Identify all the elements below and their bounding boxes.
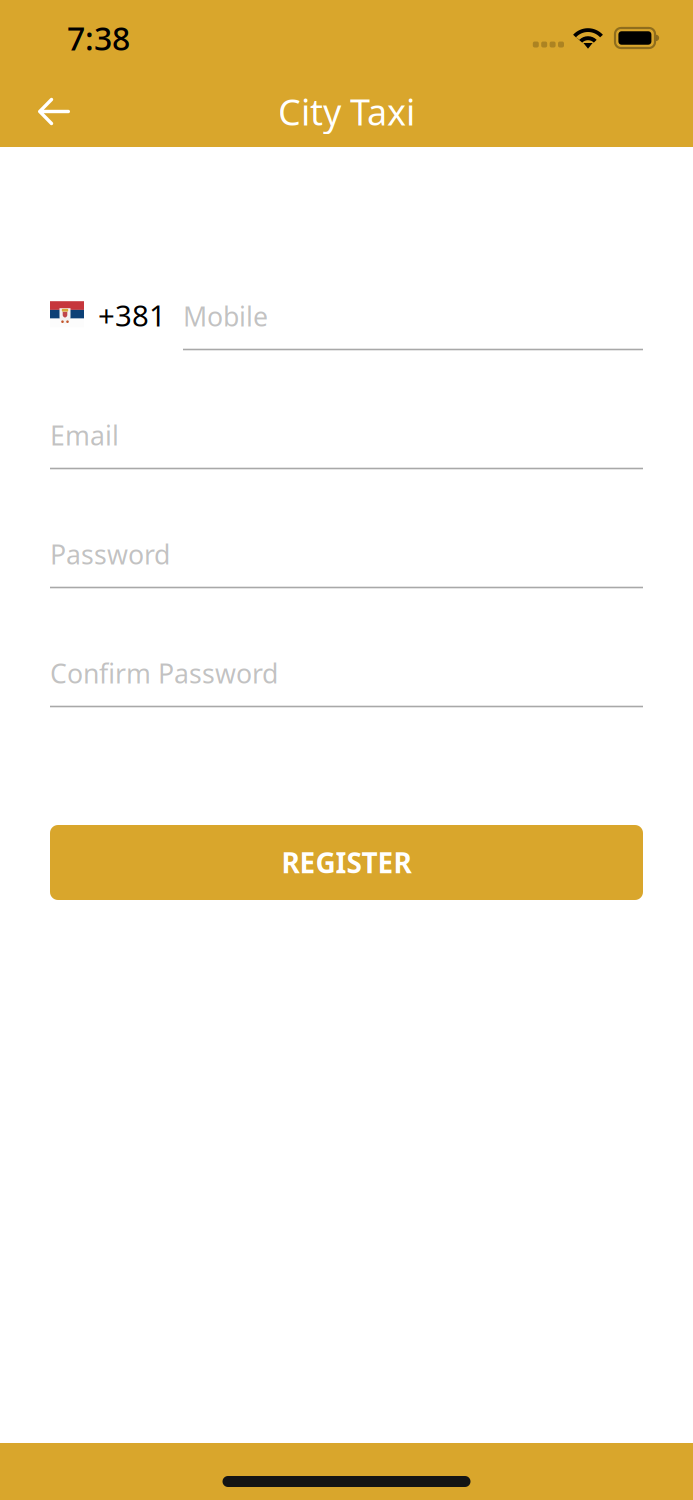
button[interactable]: Password [50,543,643,588]
staticText: Confirm Password [50,655,278,691]
staticText: City Taxi [278,88,415,135]
staticText: Password [50,536,170,572]
staticText: REGISTER [281,844,411,881]
staticText: +381 [98,296,166,335]
button[interactable]: Back [25,82,83,140]
staticText: Mobile [183,298,268,334]
button[interactable]: Confirm Password [50,662,643,707]
button[interactable]: Email [50,424,643,469]
staticText: 7:38 [67,17,130,59]
staticText: Email [50,417,119,453]
button[interactable]: Mobile [183,305,643,350]
button[interactable]: REGISTER [50,825,643,900]
